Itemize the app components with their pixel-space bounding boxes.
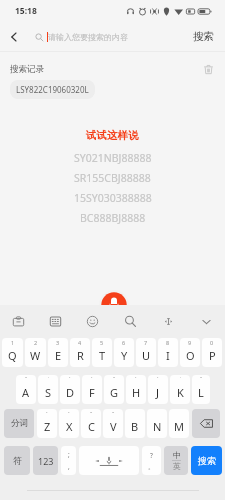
button[interactable]: 0 (202, 338, 222, 367)
button[interactable]: ˙ (170, 375, 190, 404)
button[interactable]: B (125, 409, 145, 438)
staticText: ˊ (69, 376, 71, 383)
button[interactable]: 9 (180, 338, 200, 367)
staticText: 分词 (11, 418, 28, 429)
staticText: E (55, 348, 62, 363)
staticText: M (174, 419, 184, 434)
button[interactable]: LSY822C19060320L (10, 80, 95, 99)
staticText: ˇ (200, 376, 203, 383)
staticText: ? (150, 451, 153, 460)
staticText: 试试这样说 (86, 129, 139, 142)
button[interactable]: Backspace (192, 409, 220, 438)
staticText: ; (68, 450, 70, 459)
button[interactable]: 4 (70, 338, 90, 367)
button[interactable]: ˋ (126, 375, 146, 404)
staticText: 符 (13, 455, 22, 466)
staticText: BC888BJ8888 (80, 211, 146, 225)
staticText: 15SY030388888 (74, 191, 152, 205)
staticText: 搜索 (193, 30, 214, 43)
staticText: LSY822C19060320L (16, 84, 89, 95)
button[interactable]: ˇ (192, 375, 210, 404)
button[interactable]: M (169, 409, 189, 438)
button[interactable]: 中 (164, 446, 188, 475)
button[interactable]: SY021NBJ88888 (74, 148, 152, 168)
button[interactable]: ; (61, 446, 76, 475)
staticText: 。 (148, 463, 155, 471)
button[interactable]: 1 (2, 338, 23, 367)
button[interactable]: ? (142, 446, 161, 475)
staticText: ˇ (25, 376, 28, 383)
staticText: L (198, 385, 204, 400)
staticText: ˋ (91, 376, 93, 383)
staticText: ˙ (48, 376, 49, 383)
button[interactable]: ˇ (16, 375, 36, 404)
button[interactable]: 分词 (4, 409, 34, 438)
button[interactable]: Emoji (74, 305, 111, 338)
staticText: SY021NBJ88888 (74, 151, 152, 165)
staticText: ˊ (157, 376, 159, 383)
staticText: 2 (34, 339, 38, 346)
staticText: ˋ (135, 376, 137, 383)
button[interactable]: Clear search history (200, 61, 216, 77)
button[interactable]: Clipboard (0, 305, 37, 338)
staticText: ˊ (46, 410, 48, 417)
staticText: D (66, 385, 75, 400)
button[interactable]: Keyboard layout (37, 305, 74, 338)
button[interactable]: Move cursor (149, 305, 187, 338)
staticText: V (110, 419, 117, 434)
staticText: 1 (11, 339, 15, 346)
button[interactable]: 搜索 (191, 446, 222, 475)
staticText: Q (8, 348, 17, 363)
button[interactable]: 符 (4, 446, 30, 475)
button[interactable]: Collapse keyboard (187, 305, 225, 338)
staticText: C (88, 419, 95, 434)
button[interactable]: ˊ (37, 409, 57, 438)
staticText: 3 (56, 339, 60, 346)
staticText: 7 (144, 339, 148, 346)
button[interactable]: 7 (136, 338, 156, 367)
button[interactable]: Back (0, 23, 28, 51)
button[interactable]: 2 (25, 338, 46, 367)
staticText: T (99, 348, 106, 363)
button[interactable]: Voice input (99, 289, 129, 305)
staticText: 中 (173, 450, 181, 460)
staticText: B (131, 419, 139, 434)
staticText: X (66, 419, 73, 434)
button[interactable]: ˇ (104, 375, 124, 404)
staticText: 6 (122, 339, 126, 346)
button[interactable]: 搜索 (182, 22, 225, 51)
staticText: , (68, 462, 70, 471)
button[interactable]: ˋ (82, 375, 102, 404)
staticText: Z (44, 419, 51, 434)
button[interactable]: Search (111, 305, 149, 338)
staticText: H (132, 385, 141, 400)
button[interactable]: 8 (158, 338, 178, 367)
staticText: ˋ (68, 410, 70, 417)
button[interactable]: 15SY030388888 (74, 188, 152, 208)
staticText: A (22, 385, 30, 400)
staticText: P (209, 348, 216, 363)
button[interactable]: SR155CBJ88888 (74, 168, 151, 188)
button[interactable]: ˇ (103, 409, 123, 438)
button[interactable]: ˋ (59, 409, 79, 438)
staticText: ˇ (112, 410, 115, 417)
staticText: 4 (78, 339, 82, 346)
staticText: N (153, 419, 162, 434)
staticText: SR155CBJ88888 (74, 171, 151, 185)
staticText: G (110, 385, 119, 400)
button[interactable]: ˙ (38, 375, 58, 404)
staticText: 请输入您要搜索的内容 (48, 32, 128, 42)
staticText: 8 (166, 339, 170, 346)
button[interactable]: Space (79, 446, 139, 475)
button[interactable]: ˇ (81, 409, 101, 438)
button[interactable]: N (147, 409, 167, 438)
button[interactable]: ˊ (60, 375, 80, 404)
staticText: S (45, 385, 52, 400)
button[interactable]: 3 (48, 338, 68, 367)
button[interactable]: BC888BJ8888 (80, 208, 146, 228)
button[interactable]: 6 (114, 338, 134, 367)
button[interactable]: ˊ (148, 375, 168, 404)
button[interactable]: 123 (33, 446, 58, 475)
button[interactable]: 5 (92, 338, 112, 367)
staticText: 15:18 (15, 5, 37, 17)
